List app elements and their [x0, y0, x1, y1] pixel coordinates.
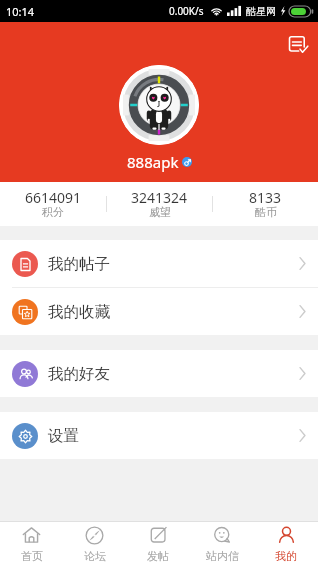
staticText: 0.00K/s: [169, 4, 204, 18]
button[interactable]: 我的帖子: [0, 240, 318, 287]
staticText: 我的好友: [48, 364, 110, 384]
staticText: 设置: [48, 426, 79, 446]
button[interactable]: 3241324: [107, 188, 212, 221]
staticText: 酷币: [255, 205, 277, 219]
staticText: 我的帖子: [48, 254, 110, 274]
staticText: 10:14: [6, 4, 35, 19]
button[interactable]: 我的收藏: [0, 288, 318, 335]
button[interactable]: 站内信: [190, 522, 254, 566]
staticText: 论坛: [84, 549, 106, 563]
staticText: 6614091: [25, 188, 82, 207]
staticText: 站内信: [206, 549, 239, 563]
staticText: 积分: [42, 205, 64, 219]
staticText: 首页: [21, 549, 43, 563]
button[interactable]: 首页: [0, 522, 63, 566]
button[interactable]: 消息: [277, 24, 317, 64]
button[interactable]: 论坛: [63, 522, 126, 566]
staticText: 威望: [149, 205, 171, 219]
button[interactable]: 8133: [213, 188, 318, 221]
button[interactable]: 设置: [0, 412, 318, 459]
staticText: 8133: [249, 188, 282, 207]
button[interactable]: 我的: [254, 522, 318, 566]
staticText: 888apk: [127, 152, 179, 172]
button[interactable]: 发帖: [126, 522, 190, 566]
staticText: 发帖: [147, 549, 169, 563]
button[interactable]: 我的好友: [0, 350, 318, 397]
staticText: 酷星网: [246, 5, 276, 18]
staticText: 3241324: [131, 188, 188, 207]
staticText: 我的收藏: [48, 302, 110, 322]
button[interactable]: 6614091: [0, 188, 106, 221]
staticText: 我的: [275, 549, 297, 563]
